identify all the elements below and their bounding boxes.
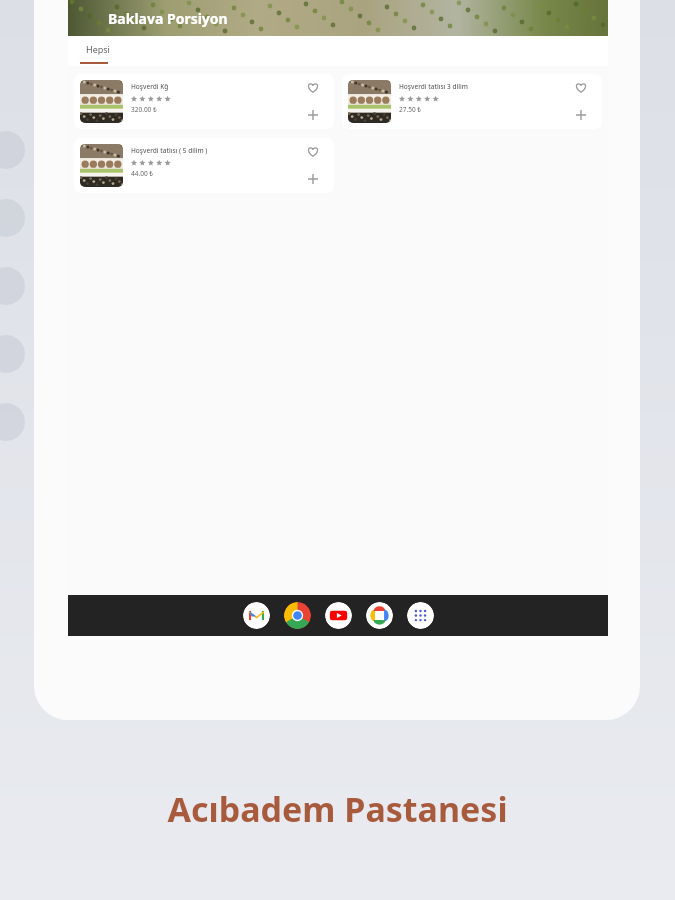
button[interactable]: Google Photos [366, 602, 393, 629]
staticText: Hoşverdi tatlısı 3 dilim [399, 82, 468, 91]
button[interactable]: Hoşverdi tatlısı 3 dilim [342, 74, 602, 129]
button[interactable]: Sepete ekle [305, 171, 321, 187]
button[interactable]: Chrome [284, 602, 311, 629]
staticText: 27.50 ₺ [399, 105, 422, 114]
staticText: Hepsi [86, 43, 110, 55]
button[interactable]: Favorilere ekle [305, 80, 321, 96]
button[interactable]: Hepsi [80, 36, 116, 62]
staticText: Baklava Porsiyon [108, 9, 228, 28]
staticText: Hoşverdi Kğ [131, 82, 169, 91]
button[interactable]: Hoşverdi tatlısı ( 5 dilim ) [74, 138, 334, 193]
button[interactable]: Sepete ekle [305, 107, 321, 123]
staticText: 320.00 ₺ [131, 105, 157, 114]
button[interactable]: Favorilere ekle [305, 144, 321, 160]
button[interactable]: Sepete ekle [573, 107, 589, 123]
button[interactable]: Uygulamalar [407, 602, 434, 629]
staticText: 44.00 ₺ [131, 169, 154, 178]
staticText: Hoşverdi tatlısı ( 5 dilim ) [131, 146, 208, 155]
button[interactable]: Hoşverdi Kğ [74, 74, 334, 129]
button[interactable]: Gmail [243, 602, 270, 629]
button[interactable]: YouTube [325, 602, 352, 629]
button[interactable]: Favorilere ekle [573, 80, 589, 96]
staticText: Acıbadem Pastanesi [0, 786, 675, 832]
